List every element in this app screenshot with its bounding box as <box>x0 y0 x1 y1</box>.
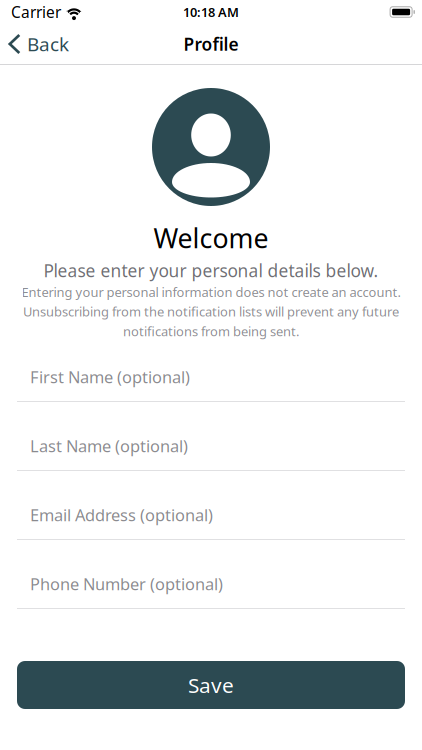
button[interactable]: Back <box>0 24 78 64</box>
staticText: Welcome <box>153 220 268 256</box>
staticText: Last Name (optional) <box>30 435 188 457</box>
button[interactable]: Save <box>17 661 405 709</box>
staticText: Email Address (optional) <box>30 504 213 526</box>
staticText: Please enter your personal details below… <box>43 259 378 282</box>
staticText: First Name (optional) <box>30 366 190 388</box>
staticText: Unsubscribing from the notification list… <box>23 303 399 320</box>
staticText: 10:18 AM <box>183 3 239 21</box>
staticText: Profile <box>183 32 238 56</box>
staticText: notifications from being sent. <box>123 322 299 340</box>
staticText: Back <box>27 31 69 57</box>
staticText: Save <box>188 671 234 699</box>
staticText: Entering your personal information does … <box>21 283 400 301</box>
staticText: Carrier <box>11 1 61 23</box>
staticText: Phone Number (optional) <box>30 573 223 595</box>
